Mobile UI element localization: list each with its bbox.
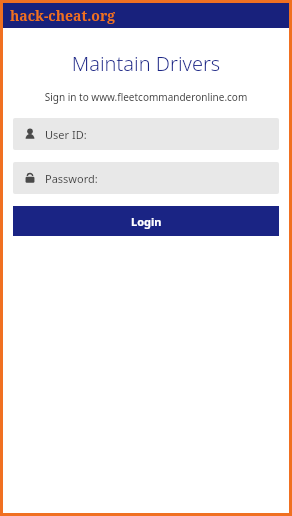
button[interactable]: User ID: [13,118,279,150]
staticText: User ID: [45,127,87,142]
staticText: Login [131,214,162,229]
staticText: Password: [45,171,98,186]
staticText: Sign in to www.fleetcommanderonline.com [3,90,289,104]
button[interactable]: Login [13,206,279,236]
button[interactable]: Password: [13,162,279,194]
staticText: hack-cheat.org [10,6,116,25]
staticText: Maintain Drivers [3,50,289,77]
